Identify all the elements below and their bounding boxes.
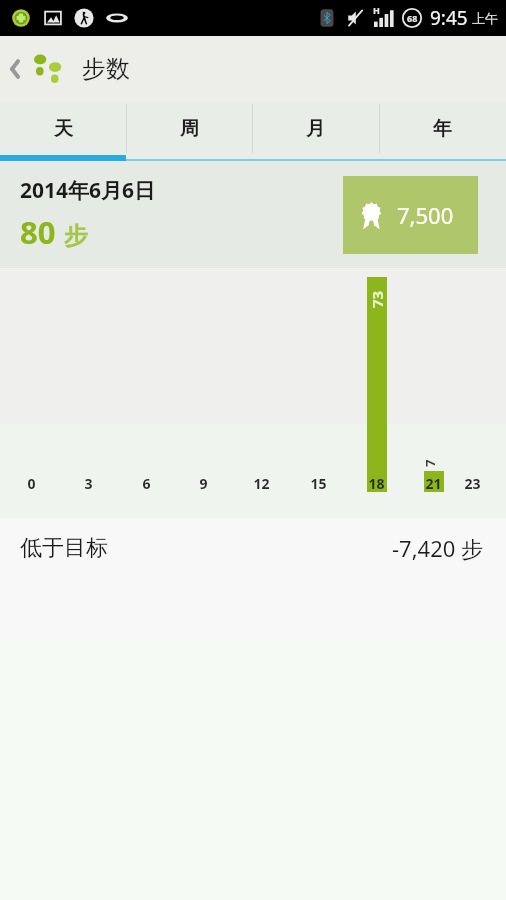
button[interactable]: 周 <box>126 102 252 155</box>
staticText: 73 <box>367 290 387 308</box>
button[interactable]: 低于目标 <box>0 518 506 578</box>
other: Back <box>6 56 26 82</box>
staticText: 68 <box>407 12 418 24</box>
staticText: 80 <box>20 211 56 253</box>
staticText: H <box>373 4 380 16</box>
staticText: 周 <box>180 117 199 141</box>
staticText: 上午 <box>472 10 498 26</box>
staticText: 7,500 <box>397 200 454 230</box>
staticText: 3 <box>84 474 93 493</box>
staticText: 步 <box>64 221 88 251</box>
button[interactable]: 月 <box>252 102 379 155</box>
staticText: 23 <box>464 474 481 493</box>
staticText: 年 <box>433 117 452 141</box>
button[interactable]: Back <box>0 36 142 102</box>
staticText: 月 <box>306 117 325 141</box>
staticText: 21 <box>425 474 442 493</box>
button[interactable]: 天 <box>0 102 126 155</box>
staticText: 天 <box>54 117 73 141</box>
staticText: 9:45 <box>430 5 468 31</box>
staticText: 6 <box>142 474 151 493</box>
staticText: 15 <box>310 474 327 493</box>
staticText: 9 <box>199 474 208 493</box>
staticText: 步数 <box>82 54 130 84</box>
staticText: 12 <box>253 474 270 493</box>
staticText: 低于目标 <box>20 534 108 562</box>
staticText: 18 <box>368 474 385 493</box>
staticText: -7,420 步 <box>392 533 484 563</box>
button[interactable]: 年 <box>379 102 506 155</box>
staticText: 0 <box>27 474 36 493</box>
staticText: 2014年6月6日 <box>20 176 156 205</box>
button[interactable]: 7,500 <box>343 176 478 254</box>
staticText: 7 <box>421 459 439 467</box>
